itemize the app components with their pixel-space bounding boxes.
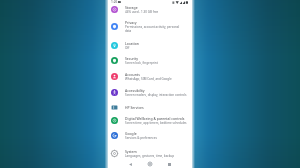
staticText: WhatsApp, SIM Card, and Google [125, 77, 172, 81]
staticText: Privacy [125, 20, 137, 25]
staticText: 1:26 [111, 0, 118, 4]
staticText: Screen lock, fingerprint [125, 61, 158, 65]
staticText: Languages, gestures, time, backup [125, 154, 175, 158]
staticText: HP Services [125, 105, 144, 110]
button[interactable]: Storage [108, 2, 192, 16]
staticText: Accounts [125, 72, 140, 77]
staticText: Location [125, 41, 139, 46]
staticText: Screen readers, display, interaction con… [125, 93, 187, 97]
staticText: Storage [125, 5, 138, 10]
staticText: Screen time, app timers, bedtime schedul… [125, 121, 187, 125]
staticText: Services & preferences [125, 136, 157, 140]
button[interactable]: Privacy [108, 19, 192, 33]
button[interactable]: Recent apps [163, 159, 175, 168]
button[interactable]: HP Services [108, 101, 192, 113]
button[interactable]: Location [108, 38, 192, 52]
button[interactable]: Accessibility [108, 85, 192, 99]
button[interactable]: Digital Wellbeing & parental controls [108, 113, 192, 127]
button[interactable]: System [108, 146, 192, 160]
button[interactable]: Security [108, 53, 192, 67]
button[interactable]: Home [144, 159, 156, 168]
staticText: System [125, 149, 137, 154]
staticText: Off [125, 46, 130, 50]
button[interactable]: Back [124, 159, 136, 168]
staticText: Permissions, account activity, personal … [125, 25, 180, 33]
staticText: Digital Wellbeing & parental controls [125, 116, 185, 121]
staticText: Accessibility [125, 88, 145, 93]
staticText: Google [125, 131, 137, 136]
staticText: 44% used - 1.30 GB free [125, 10, 159, 14]
button[interactable]: Google [108, 128, 192, 142]
button[interactable]: Accounts [108, 69, 192, 83]
staticText: Security [125, 56, 139, 61]
